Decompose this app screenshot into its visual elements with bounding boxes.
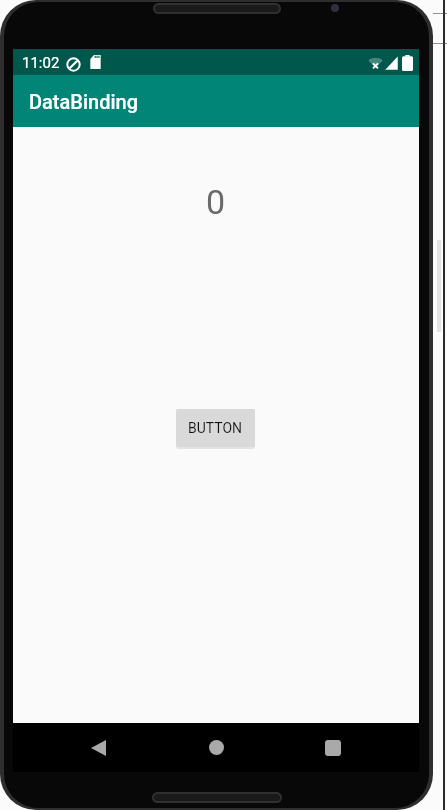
- button[interactable]: Home: [180, 723, 252, 772]
- button[interactable]: BUTTON: [176, 409, 255, 447]
- staticText: DataBinding: [29, 90, 138, 113]
- staticText: BUTTON: [188, 420, 243, 436]
- staticText: 0: [206, 182, 226, 222]
- button[interactable]: Back: [62, 723, 134, 772]
- staticText: 11:02: [22, 54, 60, 72]
- button[interactable]: Recent apps: [297, 723, 369, 772]
